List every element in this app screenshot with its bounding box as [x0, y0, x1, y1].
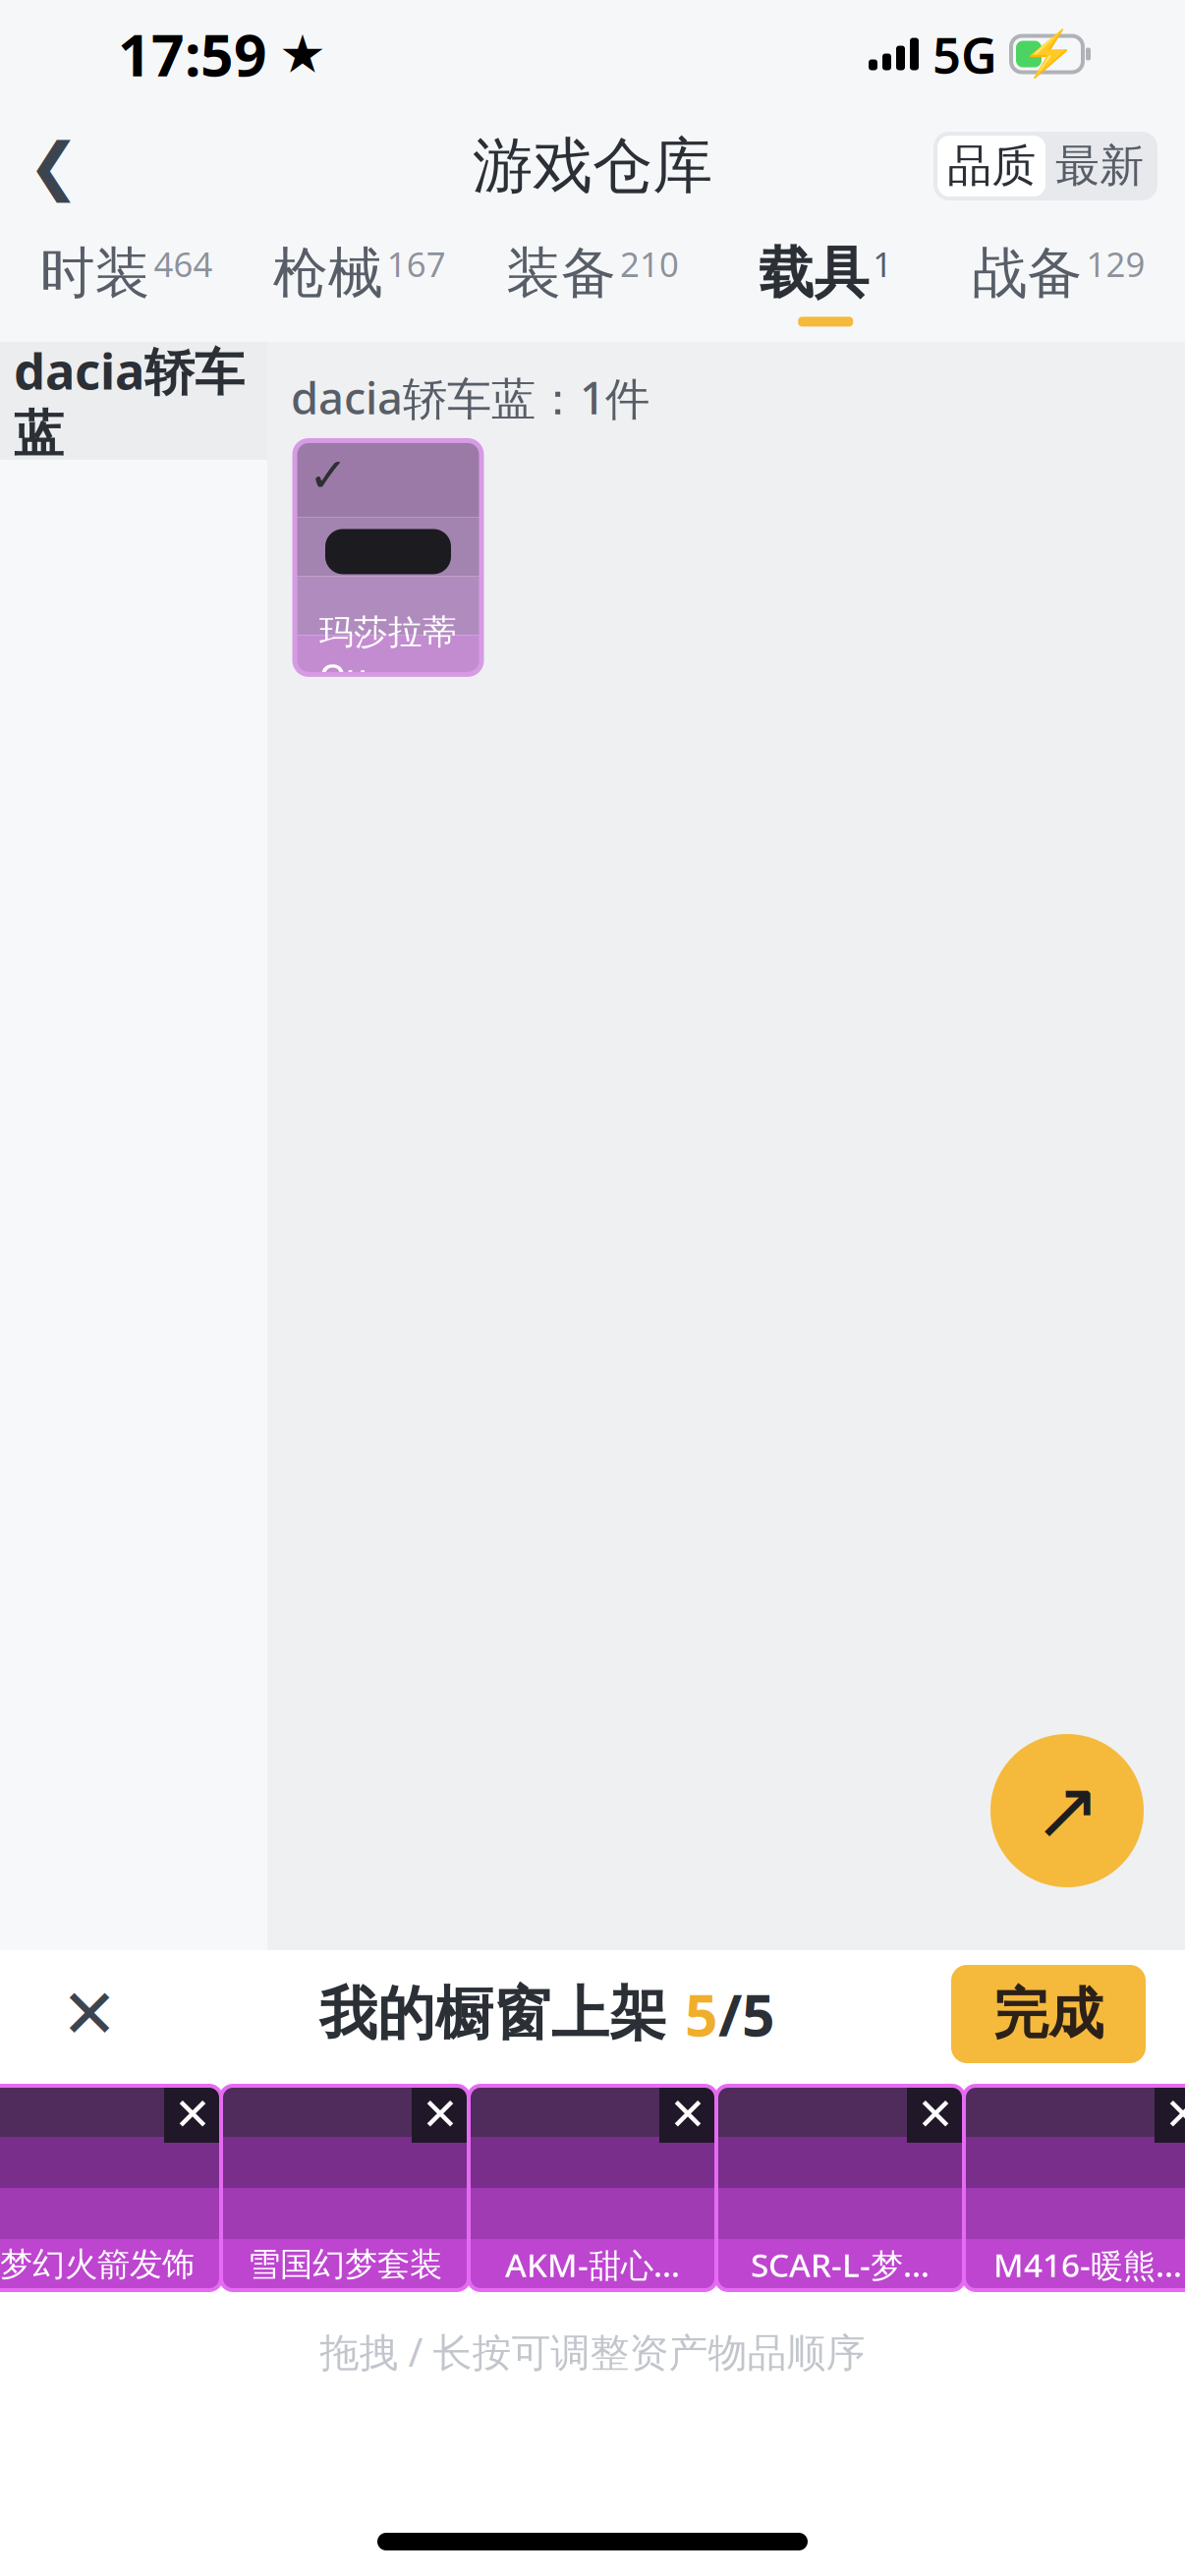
button[interactable]: dacia轿车蓝 [0, 342, 267, 460]
staticText: 载具 [759, 239, 869, 307]
button[interactable]: 关闭 [35, 1960, 143, 2068]
staticText: SCAR-L-梦… [751, 2243, 930, 2286]
button[interactable]: 分享 [990, 1734, 1144, 1887]
staticText: ✕ [174, 2089, 211, 2140]
staticText: ✕ [422, 2089, 459, 2140]
staticText: 1 [873, 241, 892, 286]
staticText: 雪国幻梦套装 [248, 2244, 442, 2285]
button[interactable]: ✕ [469, 2086, 716, 2290]
button[interactable]: ✕ [964, 2086, 1185, 2290]
staticText: M416-暖熊… [993, 2243, 1182, 2286]
staticText: 最新 [1055, 139, 1144, 193]
staticText: 游戏仓库 [473, 129, 712, 203]
button[interactable]: 载具 [709, 226, 942, 340]
button[interactable]: ✕ [0, 2086, 221, 2290]
button[interactable]: 返回 [0, 112, 108, 220]
staticText: ✕ [669, 2089, 706, 2140]
staticText: ✕ [1164, 2089, 1185, 2140]
button[interactable]: ✓ [295, 441, 481, 674]
button[interactable]: 战备 [942, 226, 1175, 340]
button[interactable]: 最新 [1045, 136, 1154, 196]
staticText: 5G [932, 21, 997, 87]
staticText: dacia轿车蓝：1件 [291, 367, 649, 427]
staticText: 5 [685, 1976, 718, 2052]
staticText: ❮ [28, 130, 81, 202]
staticText: 167 [387, 241, 446, 286]
staticText: 梦幻火箭发饰 [0, 2244, 195, 2285]
staticText: 枪械 [273, 239, 383, 307]
staticText: ✓ [309, 448, 348, 502]
button[interactable]: ✕ [716, 2086, 964, 2290]
staticText: ↗ [1033, 1765, 1101, 1857]
button[interactable]: 装备 [476, 226, 709, 340]
staticText: ✕ [61, 1975, 118, 2053]
staticText: 品质 [947, 139, 1036, 193]
button[interactable]: ✕ [221, 2086, 469, 2290]
staticText: 战备 [972, 239, 1082, 307]
button[interactable]: 完成 [951, 1965, 1146, 2063]
staticText: 完成 [993, 1980, 1103, 2048]
staticText: 玛莎拉蒂 Qu… [319, 611, 457, 698]
staticText: 17:59 [118, 16, 267, 92]
staticText: 装备 [506, 239, 616, 307]
staticText: 时装 [40, 239, 150, 307]
button[interactable]: 枪械 [243, 226, 476, 340]
staticText: ★ [279, 24, 326, 84]
staticText: AKM-甜心… [505, 2243, 680, 2286]
button[interactable]: 品质 [937, 136, 1045, 196]
staticText: dacia轿车蓝 [14, 337, 245, 465]
staticText: 210 [620, 241, 679, 286]
staticText: /5 [718, 1976, 775, 2052]
staticText: ✕ [917, 2089, 954, 2140]
staticText: ⚡ [1020, 29, 1075, 79]
staticText: 129 [1086, 241, 1145, 286]
staticText: 我的橱窗上架 [319, 1979, 685, 2050]
button[interactable]: 时装 [10, 226, 243, 340]
staticText: 拖拽 / 长按可调整资产物品顺序 [320, 2325, 865, 2378]
staticText: 464 [154, 241, 213, 286]
